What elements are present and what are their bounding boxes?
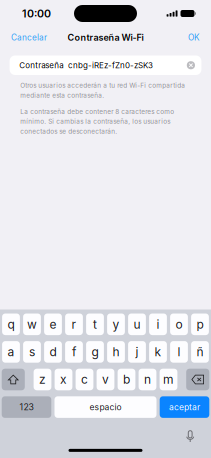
button[interactable]: Dictado (185, 430, 195, 442)
button[interactable]: s (23, 341, 41, 363)
button[interactable]: l (170, 341, 188, 363)
button[interactable]: z (34, 369, 51, 390)
staticText: u (133, 317, 140, 331)
staticText: h (112, 345, 119, 359)
button[interactable]: v (97, 369, 114, 390)
staticText: Cancelar (11, 32, 47, 42)
staticText: espacio (89, 402, 121, 412)
button[interactable]: q (2, 313, 20, 335)
button[interactable]: u (128, 313, 146, 335)
button[interactable]: w (23, 313, 41, 335)
button[interactable]: o (170, 313, 188, 335)
button[interactable]: x (55, 369, 72, 390)
button[interactable]: OK (180, 27, 208, 47)
button[interactable]: ñ (191, 341, 209, 363)
button[interactable]: k (149, 341, 167, 363)
button[interactable]: 123 (2, 396, 51, 418)
button[interactable]: a (2, 341, 20, 363)
button[interactable]: e (44, 313, 62, 335)
button[interactable]: t (86, 313, 104, 335)
staticText: w (27, 317, 37, 331)
staticText: n (144, 372, 151, 387)
staticText: z (39, 372, 46, 387)
button[interactable]: g (86, 341, 104, 363)
button[interactable]: j (128, 341, 146, 363)
button[interactable]: Mayúsculas (2, 369, 25, 390)
staticText: x (60, 372, 67, 387)
staticText: g (91, 345, 98, 359)
staticText: La contraseña debe contener 8 caracteres… (20, 108, 174, 135)
staticText: d (49, 345, 56, 359)
button[interactable]: aceptar (160, 396, 209, 418)
staticText: m (163, 372, 174, 387)
button[interactable]: p (191, 313, 209, 335)
button[interactable]: f (65, 341, 83, 363)
button[interactable]: Cancelar (3, 27, 55, 47)
button[interactable]: m (160, 369, 177, 390)
staticText: s (29, 345, 35, 359)
staticText: Contraseña (19, 60, 63, 70)
staticText: 10:00 (22, 7, 51, 20)
staticText: f (72, 345, 76, 359)
staticText: aceptar (169, 402, 200, 412)
button[interactable]: Borrar texto (182, 55, 200, 75)
staticText: r (71, 317, 76, 331)
staticText: v (102, 372, 109, 387)
staticText: j (135, 345, 138, 359)
staticText: cnbg-iREz-fZn0-zSK3 (68, 60, 153, 70)
staticText: t (93, 317, 97, 331)
button[interactable]: Borrar (186, 369, 209, 390)
staticText: b (123, 372, 130, 387)
staticText: i (156, 317, 159, 331)
button[interactable]: d (44, 341, 62, 363)
staticText: e (49, 317, 56, 331)
button[interactable]: n (139, 369, 156, 390)
staticText: OK (188, 32, 200, 42)
staticText: p (196, 317, 203, 331)
staticText: q (7, 317, 14, 331)
staticText: 123 (19, 402, 33, 412)
button[interactable]: r (65, 313, 83, 335)
staticText: y (112, 317, 119, 331)
staticText: l (177, 345, 180, 359)
staticText: o (175, 317, 182, 331)
staticText: Contraseña Wi-Fi (67, 32, 143, 43)
button[interactable]: b (118, 369, 135, 390)
staticText: k (154, 345, 161, 359)
button[interactable]: y (107, 313, 125, 335)
button[interactable]: c (76, 369, 93, 390)
staticText: ñ (196, 345, 203, 359)
staticText: c (81, 372, 88, 387)
button[interactable]: h (107, 341, 125, 363)
button[interactable]: i (149, 313, 167, 335)
staticText: a (7, 345, 14, 359)
staticText: Otros usuarios accederán a tu red Wi-Fi … (20, 81, 185, 99)
button[interactable]: espacio (54, 396, 156, 418)
